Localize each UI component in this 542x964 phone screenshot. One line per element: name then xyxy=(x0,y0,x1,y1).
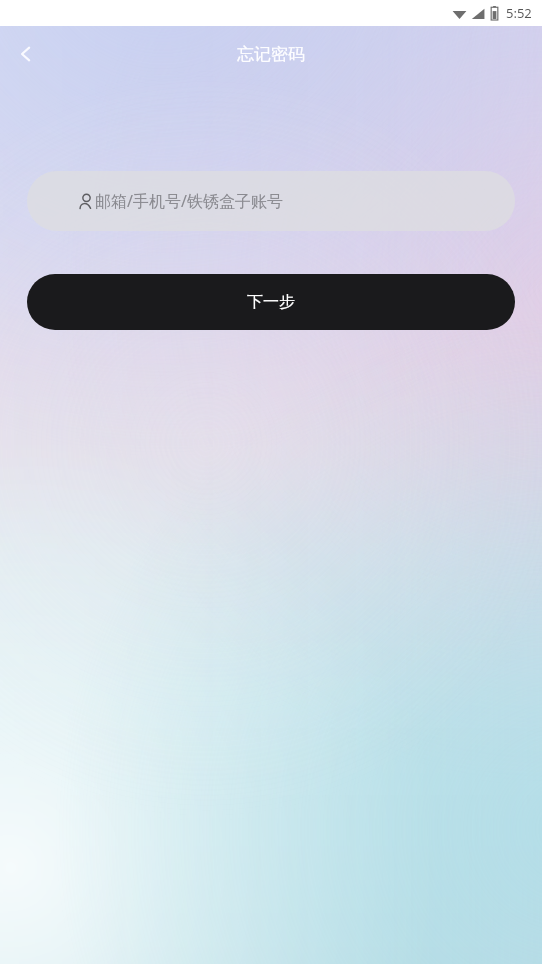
staticText: 下一步 xyxy=(247,292,295,312)
staticText: 忘记密码 xyxy=(237,44,305,65)
button[interactable]: 下一步 xyxy=(27,274,515,330)
button[interactable]: 返回 xyxy=(0,28,52,80)
button[interactable]: 邮箱/手机号/铁锈盒子账号 xyxy=(27,171,515,231)
staticText: 5:52 xyxy=(506,4,532,22)
staticText: 邮箱/手机号/铁锈盒子账号 xyxy=(95,190,283,212)
